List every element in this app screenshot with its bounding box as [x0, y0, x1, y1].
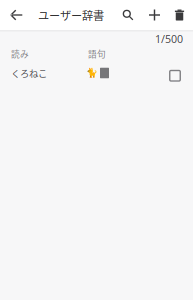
button[interactable]: くろねこ — [0, 60, 193, 86]
staticText: くろねこ — [11, 66, 47, 80]
button[interactable]: ユーザー辞書 — [27, 0, 106, 30]
staticText: ユーザー辞書 — [38, 7, 104, 23]
button[interactable]: Search — [114, 0, 142, 30]
staticText: 読み — [11, 47, 29, 60]
button[interactable]: Delete — [167, 0, 192, 30]
staticText: 🐈 — [86, 67, 98, 78]
button[interactable]: Back — [5, 0, 27, 30]
button[interactable]: Add entry — [142, 0, 167, 30]
staticText: 1/500 — [155, 32, 183, 46]
staticText: 語句 — [88, 47, 106, 60]
